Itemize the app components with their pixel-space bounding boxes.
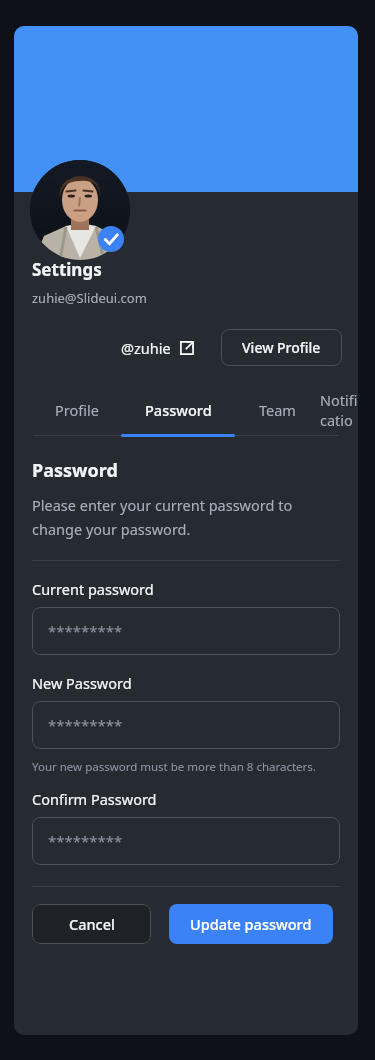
staticText: Please enter your current password to ch… xyxy=(32,495,340,539)
staticText: Password xyxy=(32,458,118,483)
staticText: Your new password must be more than 8 ch… xyxy=(32,759,316,775)
button[interactable]: ********* xyxy=(32,607,340,655)
staticText: ********* xyxy=(48,831,123,851)
button[interactable]: Notifications xyxy=(320,390,358,430)
staticText: Settings xyxy=(32,258,102,281)
button[interactable]: Password xyxy=(121,390,235,430)
staticText: zuhie@Slideui.com xyxy=(32,289,147,307)
staticText: Team xyxy=(259,400,296,420)
staticText: ********* xyxy=(48,621,123,641)
staticText: ********* xyxy=(48,715,123,735)
staticText: Cancel xyxy=(69,914,115,934)
button[interactable]: Update password xyxy=(169,904,333,944)
staticText: Current password xyxy=(32,579,154,599)
staticText: Notifications xyxy=(320,390,358,430)
staticText: @zuhie xyxy=(121,338,171,358)
button[interactable]: ********* xyxy=(32,817,340,865)
staticText: View Profile xyxy=(242,338,321,357)
other: Verified xyxy=(98,226,124,252)
staticText: Password xyxy=(145,400,212,420)
button[interactable]: ********* xyxy=(32,701,340,749)
button[interactable]: Profile xyxy=(33,390,121,430)
button[interactable]: Cancel xyxy=(32,904,151,944)
staticText: Update password xyxy=(190,914,312,934)
button[interactable]: View Profile xyxy=(221,329,342,366)
staticText: Confirm Password xyxy=(32,789,157,809)
button[interactable]: @zuhie xyxy=(117,332,199,364)
staticText: New Password xyxy=(32,673,132,693)
button[interactable]: Team xyxy=(235,390,320,430)
staticText: Profile xyxy=(55,400,99,420)
